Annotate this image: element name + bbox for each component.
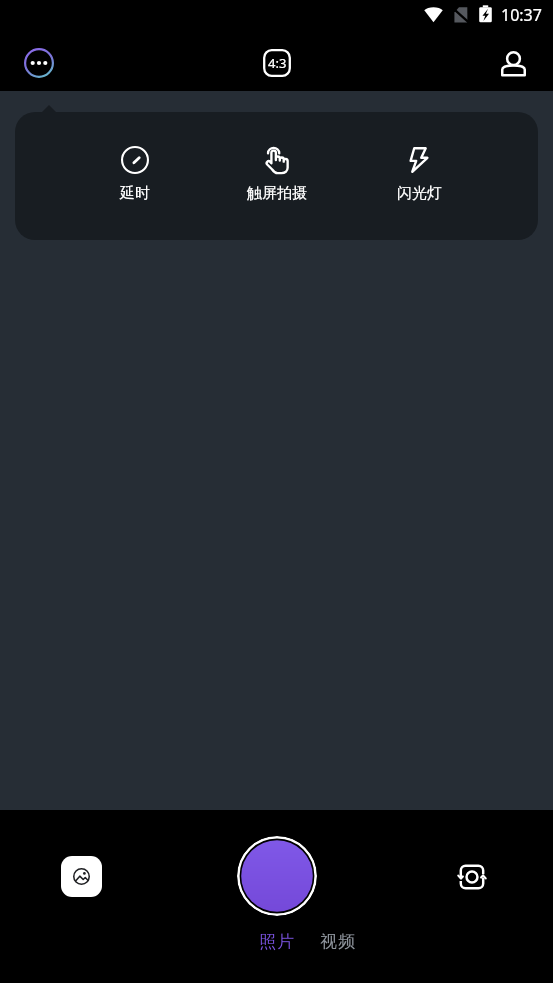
staticText: 闪光灯 [397, 184, 442, 203]
staticText: 照片 [259, 931, 296, 952]
button[interactable]: Gallery [61, 856, 102, 897]
button[interactable]: More options [17, 41, 61, 85]
staticText: 触屏拍摄 [247, 184, 307, 203]
button[interactable]: 触屏拍摄 [231, 146, 323, 203]
button[interactable]: 闪光灯 [373, 146, 465, 203]
button[interactable]: 照片 [253, 927, 302, 956]
staticText: 延时 [120, 184, 150, 203]
staticText: 10:37 [501, 4, 542, 26]
button[interactable]: 视频 [314, 927, 363, 956]
button[interactable]: Shutter [237, 836, 317, 916]
button[interactable]: Switch camera [451, 856, 492, 897]
button[interactable]: 延时 [89, 146, 181, 203]
button[interactable]: Account [493, 43, 533, 83]
button[interactable]: Aspect ratio 4:3 [257, 43, 297, 83]
staticText: 4:3 [268, 54, 287, 72]
staticText: 视频 [320, 931, 357, 952]
